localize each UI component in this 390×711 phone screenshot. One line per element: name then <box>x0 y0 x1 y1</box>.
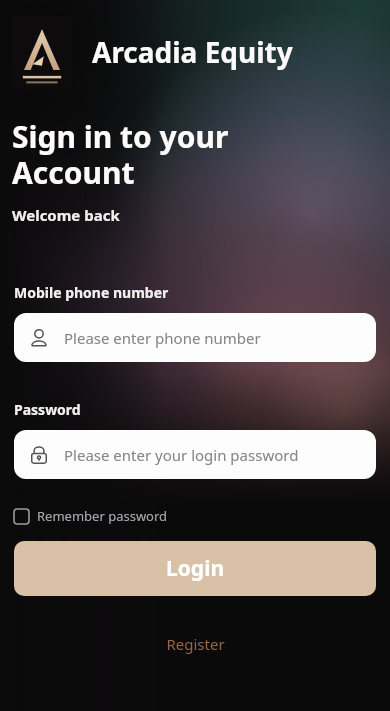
button[interactable]: Phone number <box>14 313 376 362</box>
staticText: Welcome back <box>12 205 120 225</box>
button[interactable]: Register <box>150 628 241 660</box>
button[interactable]: Password <box>14 430 376 479</box>
button[interactable]: Login <box>14 541 376 596</box>
staticText: Register <box>166 634 225 654</box>
staticText: Arcadia Equity <box>92 33 293 71</box>
staticText: Login <box>166 554 225 583</box>
staticText: Remember password <box>37 507 168 525</box>
staticText: Please enter your login password <box>64 445 299 465</box>
staticText: Password <box>14 400 81 419</box>
staticText: Please enter phone number <box>64 328 261 348</box>
other: Phone number <box>28 327 50 349</box>
other: Password <box>28 444 50 466</box>
button[interactable]: Remember password <box>12 503 170 529</box>
staticText: Sign in to your Account <box>12 116 229 193</box>
staticText: Mobile phone number <box>14 283 169 302</box>
